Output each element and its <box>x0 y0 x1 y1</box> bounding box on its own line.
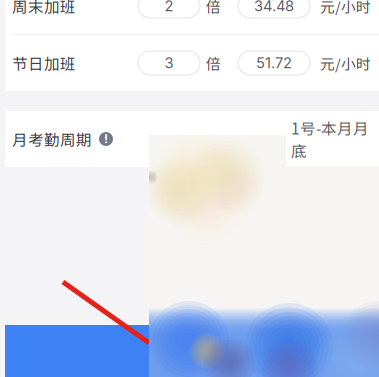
staticText: 元/小时 <box>320 0 371 17</box>
staticText: 倍 <box>206 52 221 74</box>
staticText: 节日加班 <box>12 52 76 74</box>
staticText: 34.48 <box>254 0 294 15</box>
staticText: 月考勤周期 <box>12 128 92 150</box>
staticText: 51.72 <box>256 54 292 72</box>
staticText: 元/小时 <box>320 52 371 74</box>
staticText: 倍 <box>206 0 221 17</box>
staticText: 周末加班 <box>12 0 76 17</box>
staticText: ! <box>104 132 108 146</box>
button[interactable]: 周末加班 <box>5 0 379 34</box>
staticText: 3 <box>164 54 173 72</box>
button[interactable]: 月考勤周期 <box>5 111 379 167</box>
button[interactable]: 节日加班 <box>5 35 379 91</box>
staticText: 1号-本月月底 <box>291 116 369 162</box>
staticText: 2 <box>164 0 173 15</box>
